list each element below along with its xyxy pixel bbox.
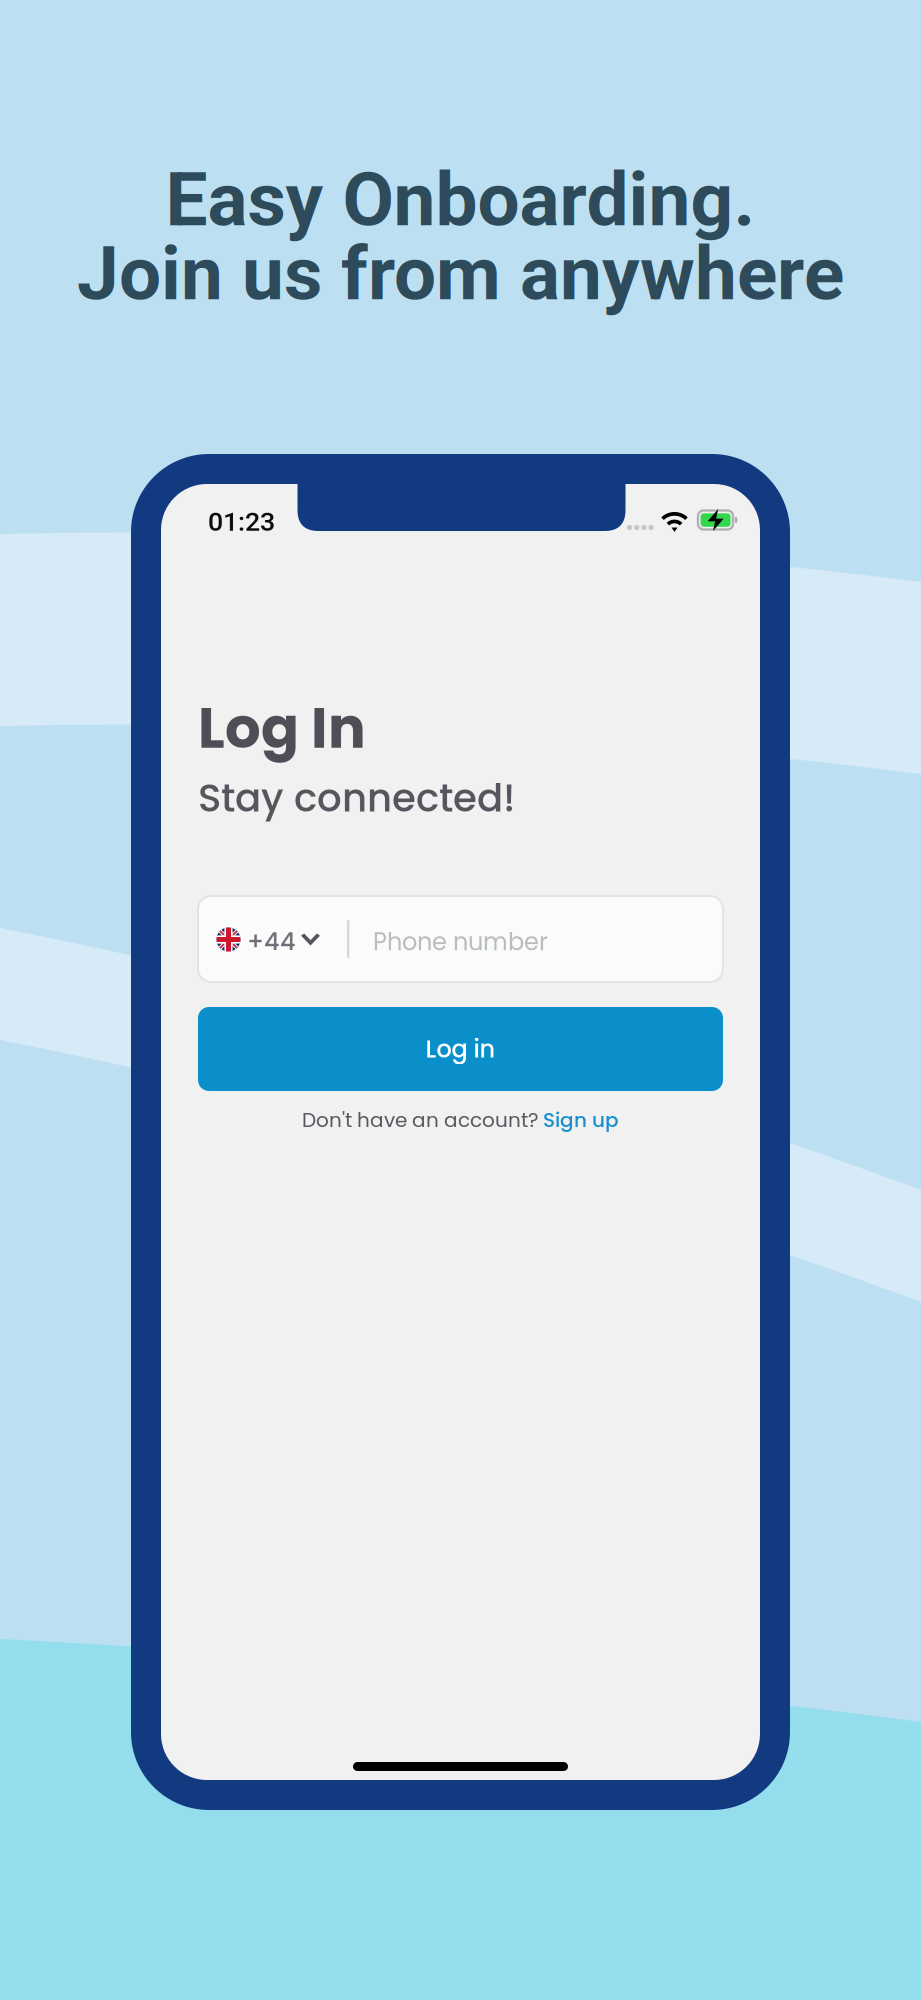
staticText: Sign up [543,1106,619,1134]
staticText: Phone number [373,925,548,959]
staticText: Log In [198,689,366,767]
staticText: Log in [425,1032,495,1066]
staticText: 01:23 [208,506,275,537]
button[interactable]: Log in [198,1007,723,1091]
staticText: +44 [247,925,296,959]
button[interactable]: Sign up [543,1106,619,1134]
button[interactable]: +44 [198,896,723,982]
staticText: Stay connected! [198,771,515,825]
staticText: Easy Onboarding. [165,156,755,243]
staticText: Don't have an account? [302,1106,538,1134]
staticText: Join us from anywhere [77,230,844,317]
